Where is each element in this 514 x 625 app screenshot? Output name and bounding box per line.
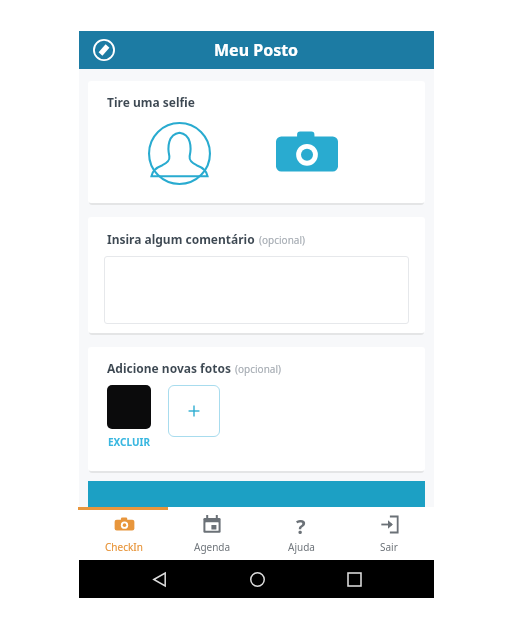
button[interactable]: Photo thumbnail <box>107 385 151 429</box>
button[interactable]: Sair <box>345 507 433 560</box>
staticText: CheckIn <box>105 540 143 554</box>
button[interactable]: ? <box>257 507 345 560</box>
button[interactable]: Agenda <box>168 507 256 560</box>
staticText: Sair <box>380 540 398 554</box>
staticText: Meu Posto <box>214 39 299 61</box>
staticText: Insira algum comentário <box>107 231 255 247</box>
button[interactable]: Comment field <box>104 256 409 324</box>
staticText: Tire uma selfie <box>107 94 195 110</box>
button[interactable]: Menu <box>89 35 119 65</box>
button[interactable]: Back <box>142 562 176 596</box>
button[interactable]: Take selfie <box>274 120 340 186</box>
staticText: Adicione novas fotos <box>107 360 231 376</box>
button[interactable]: Add photo <box>168 385 220 437</box>
button[interactable]: CheckIn <box>80 507 168 560</box>
button[interactable]: Recents <box>337 562 371 596</box>
button[interactable]: Selfie preview <box>147 121 211 185</box>
button[interactable]: Home <box>240 562 274 596</box>
staticText: (opcional) <box>235 362 281 376</box>
staticText: ? <box>296 513 306 535</box>
staticText: Ajuda <box>288 540 315 554</box>
button[interactable]: EXCLUIR <box>108 435 151 449</box>
staticText: EXCLUIR <box>108 435 151 449</box>
staticText: Agenda <box>194 540 231 554</box>
staticText: (opcional) <box>259 233 305 247</box>
